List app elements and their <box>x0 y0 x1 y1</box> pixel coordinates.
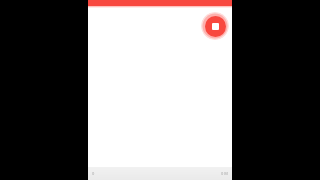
button[interactable]: Stop recording <box>201 12 229 40</box>
staticText: 0 <box>92 171 95 176</box>
staticText: 0 M <box>221 171 228 176</box>
